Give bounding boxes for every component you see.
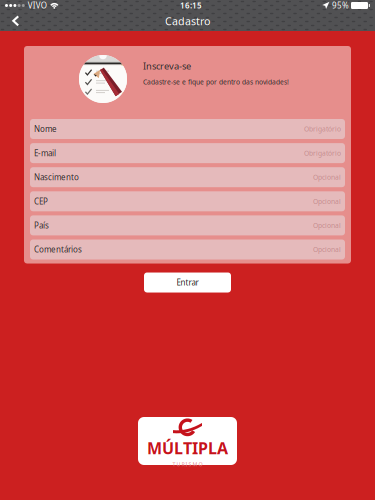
button[interactable]: E-mail <box>30 143 345 163</box>
staticText: MÚLTIPLA <box>147 437 228 458</box>
button[interactable]: CEP <box>30 191 345 211</box>
staticText: 95% <box>332 0 349 11</box>
staticText: CEP <box>34 196 48 207</box>
staticText: Nascimento <box>34 172 79 182</box>
button[interactable]: Nascimento <box>30 167 345 187</box>
button[interactable]: Comentários <box>30 239 345 259</box>
staticText: Entrar <box>176 277 198 288</box>
staticText: Opcional <box>313 221 341 230</box>
staticText: Opcional <box>313 197 341 206</box>
button[interactable]: Nome <box>30 119 345 139</box>
staticText: Opcional <box>313 245 341 254</box>
staticText: 16:15 <box>180 0 202 11</box>
staticText: Cadastro <box>165 14 210 28</box>
staticText: País <box>34 220 49 231</box>
button[interactable]: Entrar <box>144 272 231 292</box>
staticText: Cadastre-se e fique por dentro das novid… <box>143 78 289 86</box>
staticText: Obrigatório <box>304 125 341 133</box>
staticText: Obrigatório <box>304 149 341 158</box>
staticText: Nome <box>34 124 57 134</box>
button[interactable]: País <box>30 215 345 235</box>
staticText: VIVO <box>28 0 47 11</box>
staticText: E-mail <box>34 148 56 158</box>
button[interactable]: Back <box>0 11 35 31</box>
staticText: Opcional <box>313 173 341 182</box>
staticText: Inscreva-se <box>143 60 191 72</box>
staticText: Comentários <box>34 244 82 255</box>
staticText: T U R I S M O <box>172 461 202 468</box>
